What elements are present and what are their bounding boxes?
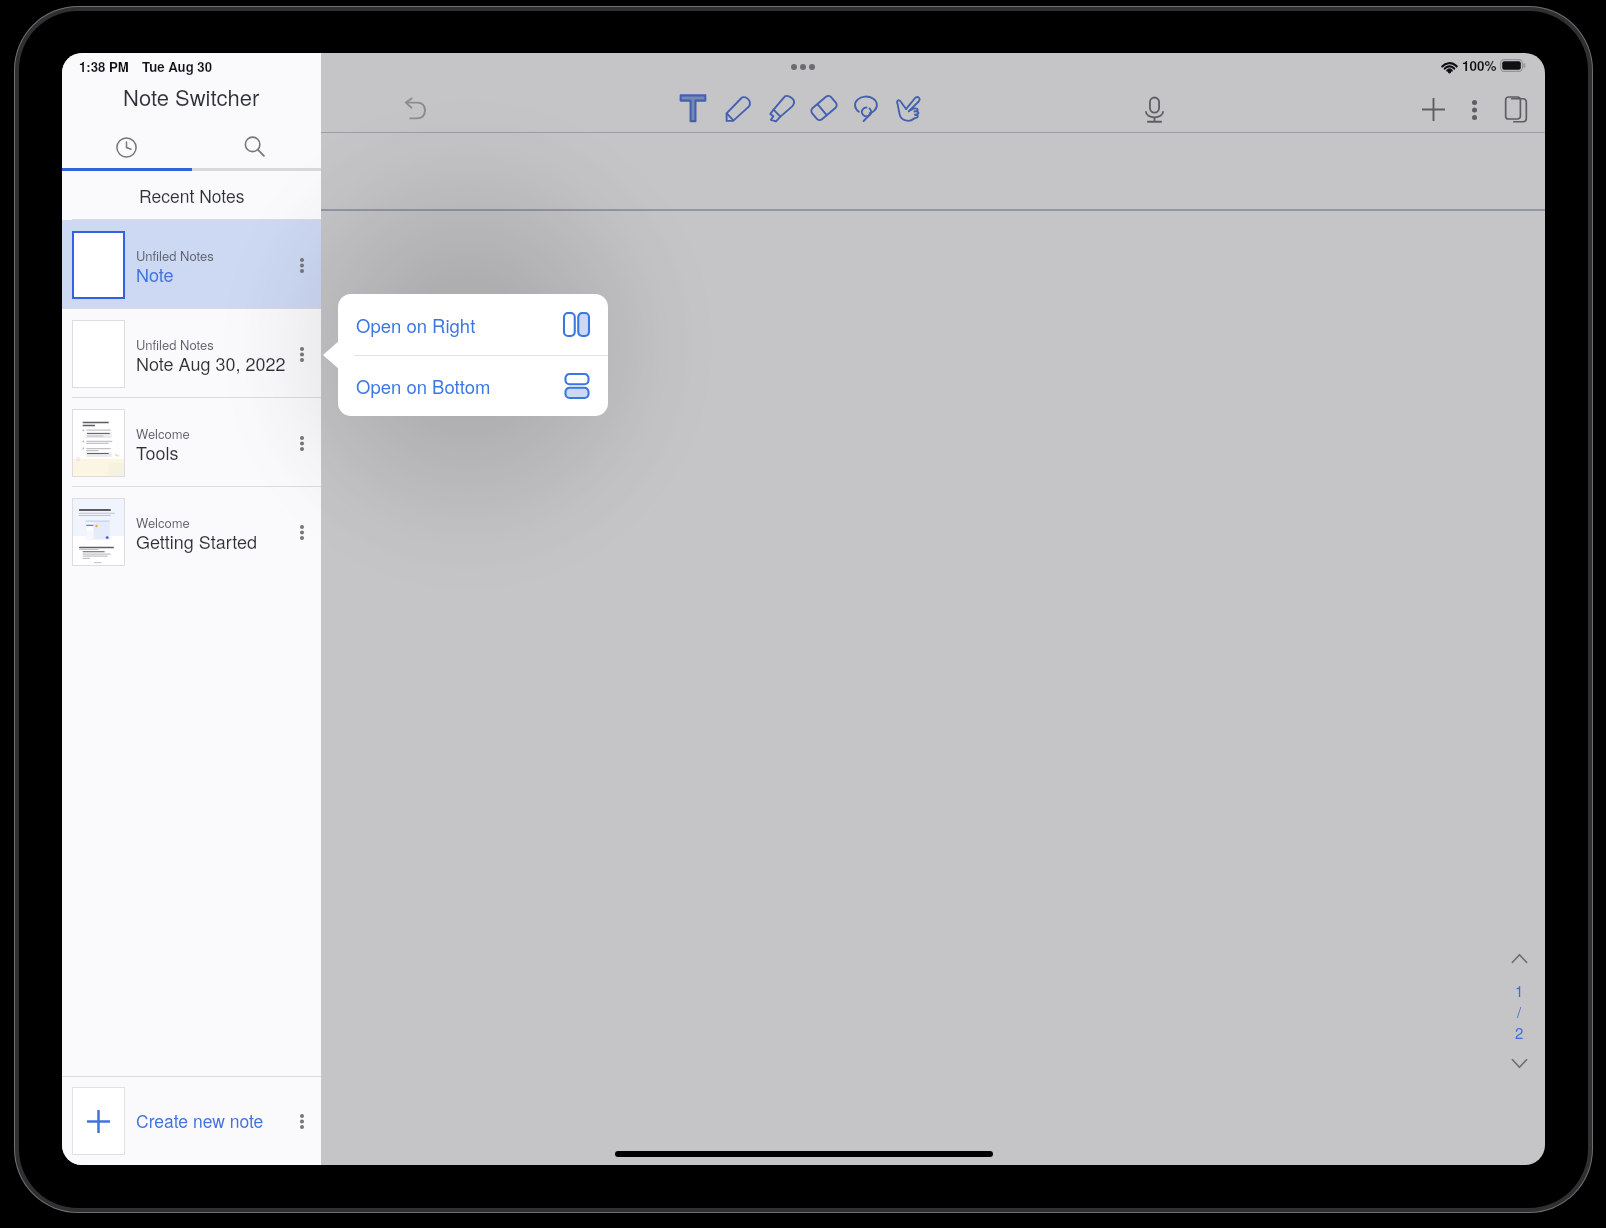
button[interactable]: Note options	[288, 1107, 316, 1135]
staticText: Note Aug 30, 2022	[136, 350, 286, 376]
staticText: Tools	[136, 439, 179, 465]
button[interactable]: Note options	[288, 251, 316, 279]
button[interactable]: Open on Right	[338, 294, 608, 355]
button[interactable]: Previous page	[1506, 945, 1532, 971]
button[interactable]: Open on Bottom	[338, 356, 608, 416]
button[interactable]: Undo	[398, 91, 432, 125]
button[interactable]: Record audio	[1137, 93, 1171, 127]
button[interactable]: Window options	[786, 53, 820, 84]
staticText: Recent Notes	[139, 183, 245, 208]
staticText: /	[1517, 1001, 1522, 1022]
button[interactable]: Unfiled Notes	[62, 309, 321, 398]
button[interactable]: Welcome	[62, 487, 321, 576]
button[interactable]: Next page	[1506, 1050, 1532, 1076]
staticText: Tue Aug 30	[142, 57, 213, 76]
staticText: Note	[136, 261, 174, 287]
staticText: 100%	[1462, 56, 1497, 75]
button[interactable]: Note options	[288, 340, 316, 368]
button[interactable]: Add page	[1416, 92, 1450, 126]
button[interactable]: Note options	[288, 429, 316, 457]
button[interactable]: Welcome	[62, 398, 321, 487]
button[interactable]: More options	[1460, 96, 1488, 124]
button[interactable]: Hand tool	[888, 87, 930, 129]
button[interactable]: Text tool	[672, 87, 714, 129]
button[interactable]: Recent notes	[111, 132, 141, 162]
button[interactable]: Pen	[717, 87, 759, 129]
staticText: 1	[1515, 980, 1524, 1001]
staticText: Welcome	[136, 513, 190, 532]
staticText: Create new note	[136, 1108, 264, 1133]
button[interactable]: Pages	[1499, 92, 1533, 126]
button[interactable]: Lasso select	[846, 87, 888, 129]
button[interactable]: Highlighter	[761, 87, 803, 129]
staticText: 1:38 PM	[79, 57, 129, 76]
button[interactable]: Note options	[288, 518, 316, 546]
staticText: 2	[1515, 1022, 1524, 1042]
button[interactable]: Unfiled Notes	[62, 220, 321, 309]
staticText: Welcome	[136, 424, 190, 443]
button[interactable]: Search notes	[239, 131, 269, 161]
staticText: Open on Right	[356, 312, 476, 338]
staticText: Open on Bottom	[356, 373, 491, 399]
staticText: Unfiled Notes	[136, 246, 214, 265]
button[interactable]: Eraser	[803, 87, 845, 129]
staticText: Note Switcher	[123, 81, 260, 112]
staticText: Getting Started	[136, 528, 258, 554]
button[interactable]: Create new note	[62, 1076, 321, 1165]
staticText: Unfiled Notes	[136, 335, 214, 354]
